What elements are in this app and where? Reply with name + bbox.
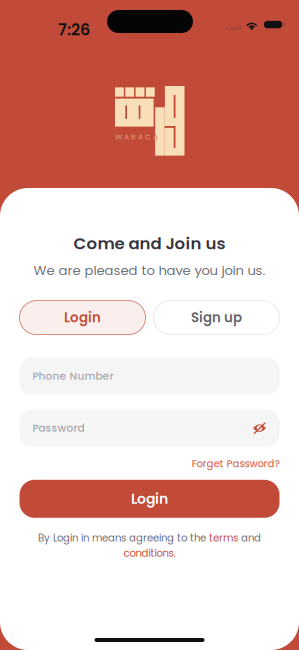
staticText: terms — [209, 531, 238, 545]
staticText: We are pleased to have you join us. — [33, 261, 265, 280]
staticText: Sign up — [191, 308, 242, 327]
button[interactable]: Phone Number — [19, 358, 279, 395]
staticText: Phone Number — [32, 369, 113, 383]
staticText: conditions. — [123, 546, 175, 560]
staticText: Forget Password? — [191, 457, 279, 471]
staticText: and — [238, 531, 261, 545]
button[interactable]: Password — [19, 410, 279, 447]
staticText: By Login in means agreeing to the — [38, 531, 209, 545]
button[interactable]: terms — [209, 531, 238, 545]
staticText: Login — [131, 489, 168, 509]
button[interactable]: Forget Password? — [191, 457, 279, 471]
staticText: Password — [32, 421, 84, 435]
button[interactable]: conditions. — [123, 546, 175, 560]
staticText: W A R A C A — [115, 132, 158, 142]
button[interactable]: Login — [19, 480, 279, 518]
staticText: Login — [64, 308, 101, 327]
button[interactable]: Login — [19, 301, 145, 335]
button[interactable]: Sign up — [153, 301, 279, 335]
staticText: 7:26 — [58, 19, 90, 41]
staticText: Come and Join us — [73, 232, 225, 255]
